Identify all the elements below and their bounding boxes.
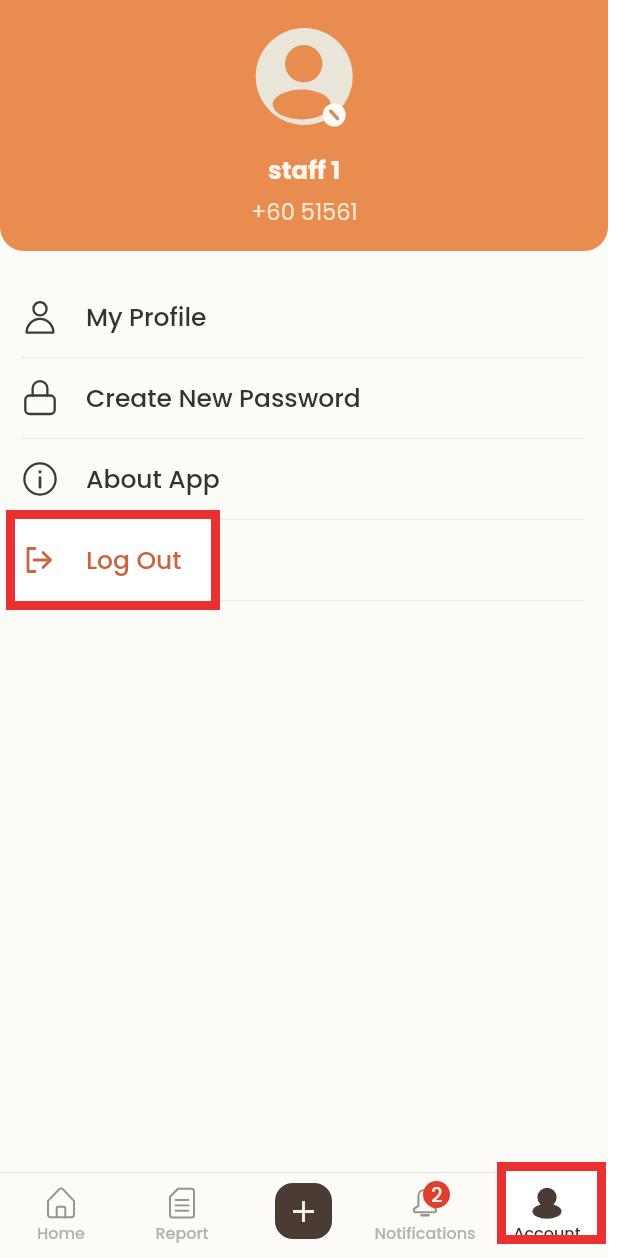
staticText: staff 1 <box>268 153 341 187</box>
staticText: 2 <box>431 1181 443 1208</box>
staticText: Log Out <box>86 543 182 578</box>
button[interactable]: Report <box>121 1172 242 1258</box>
button[interactable]: Add <box>242 1172 364 1258</box>
staticText: About App <box>86 462 220 497</box>
button[interactable]: 2 <box>364 1172 486 1258</box>
staticText: Account <box>513 1222 581 1244</box>
staticText: +60 51561 <box>251 196 358 227</box>
staticText: Create New Password <box>86 381 361 416</box>
button[interactable]: About App <box>0 439 608 519</box>
staticText: Notifications <box>374 1222 476 1244</box>
button[interactable]: Account <box>486 1172 608 1258</box>
staticText: Home <box>37 1222 85 1244</box>
staticText: Report <box>155 1222 209 1244</box>
button[interactable]: Edit profile photo <box>248 22 360 134</box>
button[interactable]: Create New Password <box>0 358 608 438</box>
button[interactable]: Log Out <box>0 520 608 600</box>
button[interactable]: My Profile <box>0 277 608 357</box>
button[interactable]: Home <box>0 1172 121 1258</box>
staticText: My Profile <box>86 300 207 335</box>
